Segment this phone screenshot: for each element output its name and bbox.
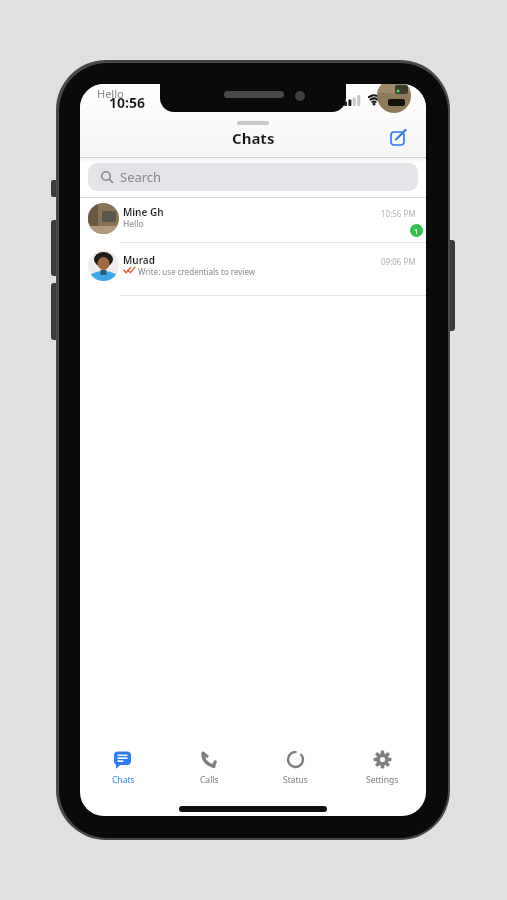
staticText: Status [283, 774, 308, 786]
staticText: Search [120, 168, 162, 186]
button[interactable]: Murad [80, 243, 426, 295]
button[interactable]: Chats [80, 748, 166, 792]
button[interactable] [390, 128, 410, 148]
staticText: 1 [414, 226, 419, 236]
staticText: Write: use credentials to review [138, 266, 256, 277]
button[interactable]: Settings [339, 748, 426, 792]
staticText: Hello [97, 86, 124, 101]
staticText: Chats [112, 774, 135, 786]
button[interactable]: Mine Gh [80, 198, 426, 242]
staticText: Murad [123, 253, 155, 267]
button[interactable]: Search [88, 163, 418, 191]
button[interactable]: Status [252, 748, 339, 792]
button[interactable]: Calls [166, 748, 252, 792]
staticText: 10:56 PM [381, 208, 416, 219]
staticText: Hello [123, 218, 144, 230]
staticText: 10:56 [109, 93, 145, 112]
staticText: Settings [366, 774, 399, 786]
staticText: Calls [200, 774, 219, 786]
staticText: 09:06 PM [381, 256, 416, 267]
staticText: Mine Gh [123, 205, 164, 219]
staticText: Chats [232, 128, 275, 148]
